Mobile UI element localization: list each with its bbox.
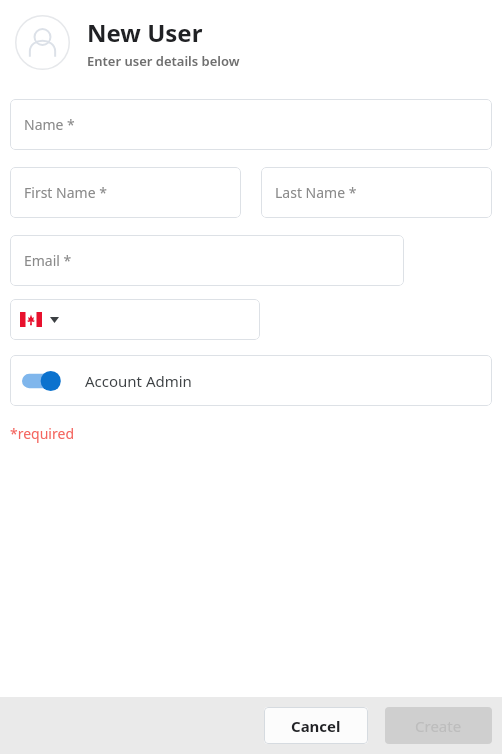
staticText: Email *: [24, 251, 72, 270]
button[interactable]: Email *: [10, 235, 404, 286]
staticText: Create: [415, 716, 462, 736]
button[interactable]: Cancel: [264, 707, 368, 744]
staticText: Cancel: [291, 716, 341, 736]
staticText: *required: [10, 424, 74, 443]
staticText: First Name *: [24, 183, 107, 202]
button[interactable]: Account Admin: [10, 355, 492, 406]
staticText: New User: [87, 16, 203, 49]
staticText: Last Name *: [275, 183, 357, 202]
button[interactable]: First Name *: [10, 167, 241, 218]
other: User avatar: [15, 15, 70, 70]
button[interactable]: Name *: [10, 99, 492, 150]
button[interactable]: Select country: [10, 299, 260, 340]
button[interactable]: Create: [385, 707, 492, 744]
staticText: Account Admin: [85, 371, 192, 391]
button[interactable]: Last Name *: [261, 167, 492, 218]
staticText: Enter user details below: [87, 52, 240, 70]
staticText: Name *: [24, 115, 75, 134]
